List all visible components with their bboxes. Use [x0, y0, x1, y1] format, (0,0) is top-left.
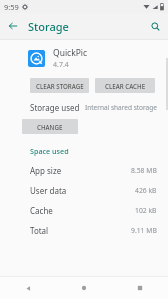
button[interactable]: CHANGE [22, 119, 78, 134]
button[interactable]: Home [56, 277, 112, 299]
staticText: Cache [30, 205, 53, 216]
staticText: Total [30, 225, 49, 236]
button[interactable]: User data [0, 180, 168, 200]
staticText: 9:59 [4, 2, 19, 12]
staticText: CHANGE [37, 123, 63, 131]
button[interactable]: Back [4, 17, 22, 35]
staticText: Internal shared storage [85, 103, 157, 112]
button[interactable]: App size [0, 160, 168, 180]
button[interactable]: Search [146, 17, 164, 35]
button[interactable]: CLEAR STORAGE [30, 78, 89, 93]
staticText: Space used [30, 146, 69, 156]
button[interactable]: Recent apps [112, 277, 168, 299]
button[interactable]: Total [0, 220, 168, 240]
staticText: 102 kB [135, 206, 157, 215]
staticText: 9.11 MB [131, 226, 157, 235]
staticText: Storage used [30, 102, 80, 113]
staticText: 426 kB [135, 186, 157, 195]
staticText: 8.58 MB [131, 166, 157, 175]
staticText: Storage [28, 19, 69, 34]
staticText: CLEAR CACHE [105, 82, 146, 90]
button[interactable]: Cache [0, 200, 168, 220]
staticText: CLEAR STORAGE [36, 82, 84, 90]
button[interactable]: Back [0, 277, 56, 299]
staticText: App size [30, 165, 62, 176]
button[interactable]: CLEAR CACHE [95, 78, 155, 93]
staticText: 4.7.4 [53, 60, 69, 69]
staticText: User data [30, 185, 67, 196]
staticText: QuickPic [53, 47, 88, 59]
